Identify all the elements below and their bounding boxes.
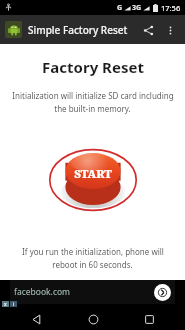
staticText: Initialization will initialize SD card i… xyxy=(12,90,174,101)
button[interactable]: Ad info xyxy=(10,301,17,307)
staticText: 17:56 xyxy=(161,3,181,13)
button[interactable]: Back xyxy=(16,308,56,330)
staticText: the built-in memory. xyxy=(54,103,131,114)
staticText: G xyxy=(117,3,123,13)
button[interactable]: Start factory reset xyxy=(47,141,139,219)
staticText: i xyxy=(13,301,15,307)
staticText: facebook.com xyxy=(14,286,71,298)
staticText: START xyxy=(74,166,112,181)
staticText: 3G xyxy=(132,3,142,13)
button[interactable]: Recent apps xyxy=(129,308,169,330)
button[interactable]: Home xyxy=(73,308,113,330)
button[interactable]: Share xyxy=(136,18,160,42)
button[interactable]: Close ad xyxy=(2,301,9,307)
button[interactable]: Open ad xyxy=(154,284,171,301)
staticText: reboot in 60 seconds. xyxy=(52,259,133,270)
button[interactable]: More options xyxy=(160,20,180,40)
button[interactable]: Advertisement facebook.com xyxy=(0,280,185,308)
button[interactable]: App icon xyxy=(5,21,22,38)
staticText: x xyxy=(4,301,7,307)
staticText: Simple Factory Reset xyxy=(28,23,128,37)
staticText: Factory Reset xyxy=(42,57,144,77)
staticText: If you run the initialization, phone wil… xyxy=(22,246,164,257)
